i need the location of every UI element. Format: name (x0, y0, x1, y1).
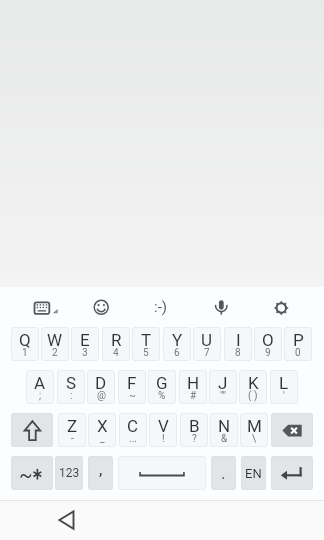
button[interactable] (263, 289, 299, 325)
button[interactable] (271, 413, 313, 447)
button[interactable]: Z (58, 413, 86, 447)
button[interactable]: Y (163, 327, 191, 361)
button[interactable]: 123 (55, 456, 83, 490)
button[interactable] (11, 413, 53, 447)
staticText: X (97, 416, 108, 436)
button[interactable]: A (26, 370, 54, 404)
staticText: L (279, 373, 289, 393)
button[interactable]: . (211, 456, 236, 490)
staticText: F (127, 373, 137, 393)
staticText: ... (129, 433, 137, 445)
staticText: E (80, 330, 90, 350)
staticText: ~ (19, 463, 33, 486)
button[interactable]: I (224, 327, 252, 361)
button[interactable]: S (57, 370, 85, 404)
staticText: & (221, 433, 228, 445)
button[interactable] (271, 456, 313, 490)
button[interactable]: V (149, 413, 177, 447)
staticText: 123 (59, 466, 80, 480)
staticText: H (187, 373, 200, 393)
button[interactable]: J (209, 370, 237, 404)
staticText: , (99, 459, 103, 479)
staticText: 5 (143, 347, 149, 359)
button[interactable] (46, 500, 86, 540)
staticText: J (218, 373, 228, 393)
staticText: ( ) (248, 390, 258, 402)
staticText: :-) (154, 298, 168, 316)
staticText: Z (67, 416, 78, 436)
staticText: C (127, 416, 139, 436)
staticText: 0 (295, 347, 301, 359)
button[interactable]: N (210, 413, 238, 447)
staticText: W (47, 330, 63, 350)
staticText: ! (162, 433, 165, 445)
button[interactable]: K (239, 370, 267, 404)
staticText: \ (252, 433, 257, 445)
staticText: O (262, 330, 274, 350)
staticText: ; (39, 390, 42, 402)
button[interactable]: C (119, 413, 147, 447)
staticText: P (293, 330, 304, 350)
button[interactable] (118, 456, 206, 490)
staticText: . (221, 463, 226, 483)
staticText: : (70, 390, 73, 402)
button[interactable]: B (180, 413, 208, 447)
staticText: ~ (129, 390, 136, 402)
staticText: "" (220, 390, 226, 402)
button[interactable] (83, 289, 119, 325)
staticText: 9 (265, 347, 271, 359)
staticText: EN (245, 466, 262, 481)
staticText: % (158, 390, 166, 402)
button[interactable]: F (118, 370, 146, 404)
button[interactable]: E (71, 327, 99, 361)
staticText: T (141, 330, 152, 350)
staticText: I (236, 330, 241, 350)
button[interactable]: U (193, 327, 221, 361)
staticText: ? (192, 433, 197, 445)
button[interactable] (24, 290, 60, 326)
staticText: K (248, 373, 259, 393)
staticText: B (189, 416, 200, 436)
button[interactable]: G (148, 370, 176, 404)
button[interactable]: O (254, 327, 282, 361)
button[interactable] (203, 289, 239, 325)
staticText: 8 (235, 347, 241, 359)
button[interactable]: EN (241, 456, 266, 490)
staticText: 2 (52, 347, 58, 359)
staticText: ' (283, 390, 285, 402)
staticText: D (95, 373, 107, 393)
staticText: V (158, 416, 169, 436)
staticText: G (156, 373, 168, 393)
staticText: 6 (174, 347, 180, 359)
staticText: S (66, 373, 77, 393)
staticText: 1 (22, 347, 28, 359)
button[interactable]: W (41, 327, 69, 361)
button[interactable]: H (179, 370, 207, 404)
button[interactable]: :-) (141, 289, 181, 325)
button[interactable]: P (284, 327, 312, 361)
staticText: - (71, 433, 74, 445)
button[interactable]: ~ (11, 456, 53, 490)
staticText: 3 (82, 347, 88, 359)
staticText: M (247, 416, 262, 436)
button[interactable]: D (87, 370, 115, 404)
button[interactable]: T (132, 327, 160, 361)
button[interactable]: M (240, 413, 268, 447)
staticText: A (34, 373, 46, 393)
button[interactable]: X (88, 413, 116, 447)
staticText: @ (97, 390, 106, 402)
staticText: # (190, 390, 197, 402)
button[interactable]: , (88, 456, 113, 490)
button[interactable]: Q (11, 327, 39, 361)
button[interactable]: L (270, 370, 298, 404)
staticText: Y (172, 330, 183, 350)
staticText: _ (100, 433, 105, 445)
staticText: N (218, 416, 231, 436)
staticText: 7 (204, 347, 210, 359)
staticText: 4 (113, 347, 119, 359)
staticText: Q (19, 330, 31, 350)
staticText: U (201, 330, 213, 350)
staticText: R (111, 330, 122, 350)
button[interactable]: R (102, 327, 130, 361)
